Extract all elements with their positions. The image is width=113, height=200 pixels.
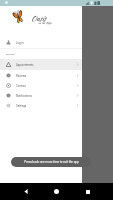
staticText: Log in — [16, 41, 24, 44]
staticText: Reviews — [16, 74, 27, 77]
button[interactable]: Settings — [0, 100, 82, 110]
staticText: Appointments — [16, 63, 34, 66]
button[interactable]: Notifications — [0, 90, 82, 100]
staticText: Booking — [6, 53, 15, 56]
button[interactable]: Contact — [0, 80, 82, 90]
button[interactable]: Log in — [0, 37, 82, 48]
staticText: Notifications — [16, 94, 32, 97]
staticText: Settings — [16, 104, 27, 107]
staticText: Press back one more time to exit the app — [24, 160, 79, 164]
button[interactable]: Reviews — [0, 70, 82, 80]
button[interactable]: Recent apps — [79, 183, 96, 200]
button[interactable]: Home — [48, 183, 65, 200]
staticText: on the Ridge — [38, 21, 52, 25]
staticText: Oasis — [31, 13, 46, 23]
button[interactable]: Appointments — [0, 59, 82, 70]
staticText: Contact — [16, 84, 26, 87]
button[interactable]: Back — [17, 183, 34, 200]
